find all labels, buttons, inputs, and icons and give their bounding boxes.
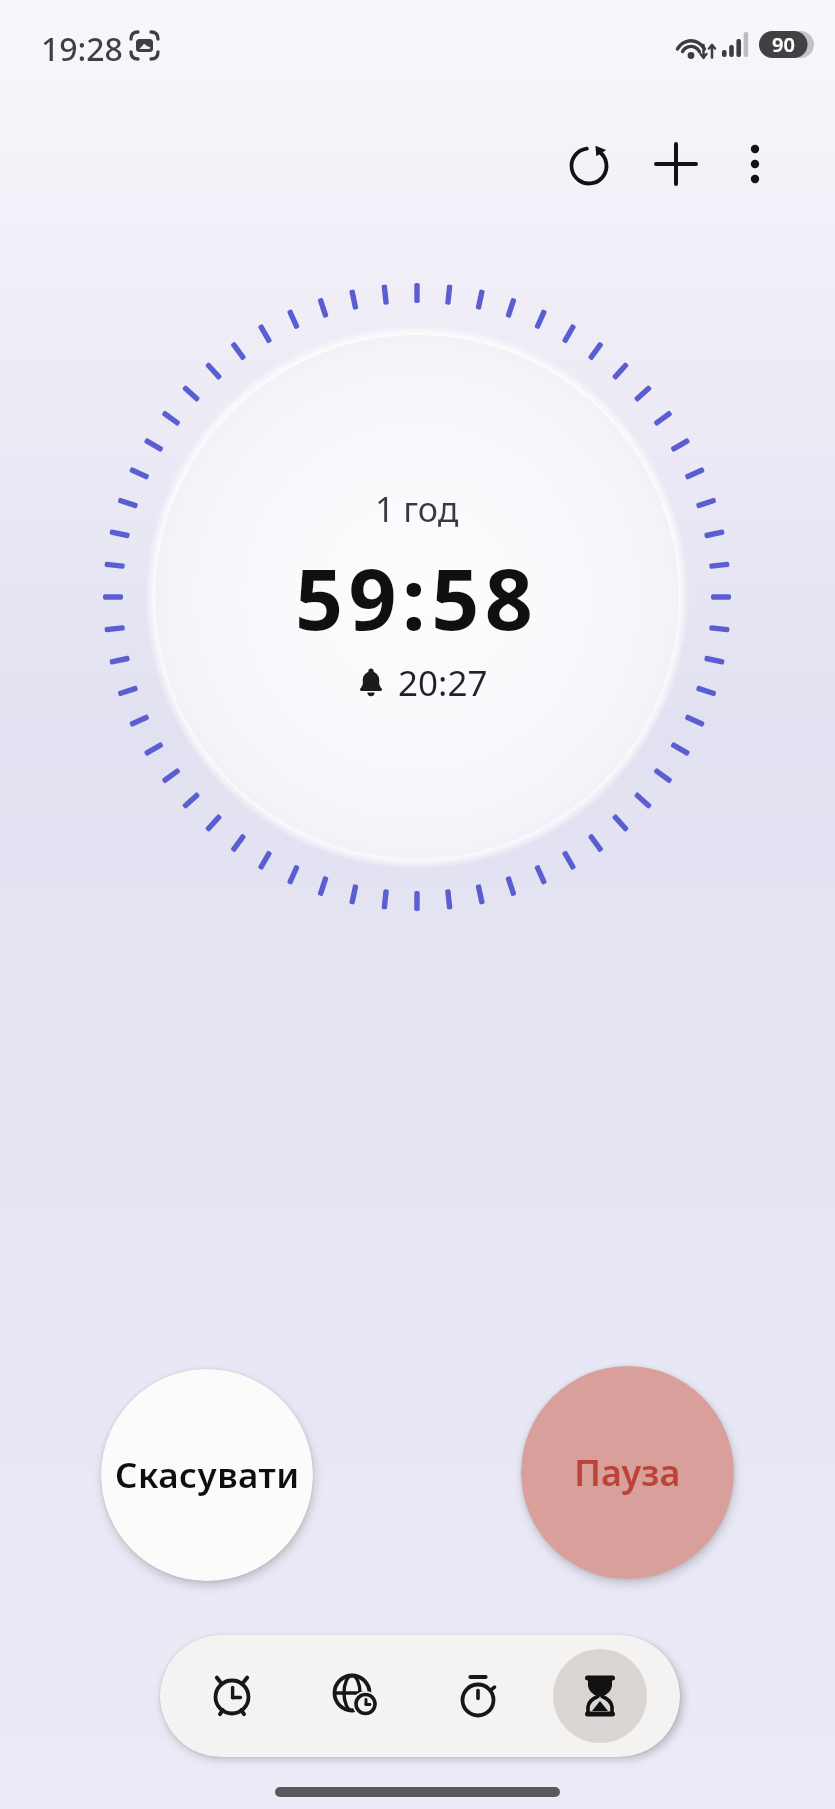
staticText: Пауза	[574, 1448, 681, 1497]
button[interactable]	[727, 136, 783, 192]
button[interactable]: Пауза	[521, 1366, 734, 1579]
button[interactable]	[185, 1649, 279, 1743]
button[interactable]: Скасувати	[101, 1369, 313, 1581]
button[interactable]	[561, 136, 617, 192]
staticText: 1 год	[375, 486, 459, 532]
button[interactable]	[648, 136, 704, 192]
button[interactable]	[309, 1649, 403, 1743]
staticText: 59:58	[295, 540, 539, 654]
button[interactable]	[553, 1649, 647, 1743]
button[interactable]	[431, 1649, 525, 1743]
staticText: 90	[772, 31, 795, 58]
staticText: 20:27	[398, 659, 488, 707]
staticText: 19:28	[41, 27, 123, 71]
staticText: Скасувати	[115, 1451, 300, 1499]
